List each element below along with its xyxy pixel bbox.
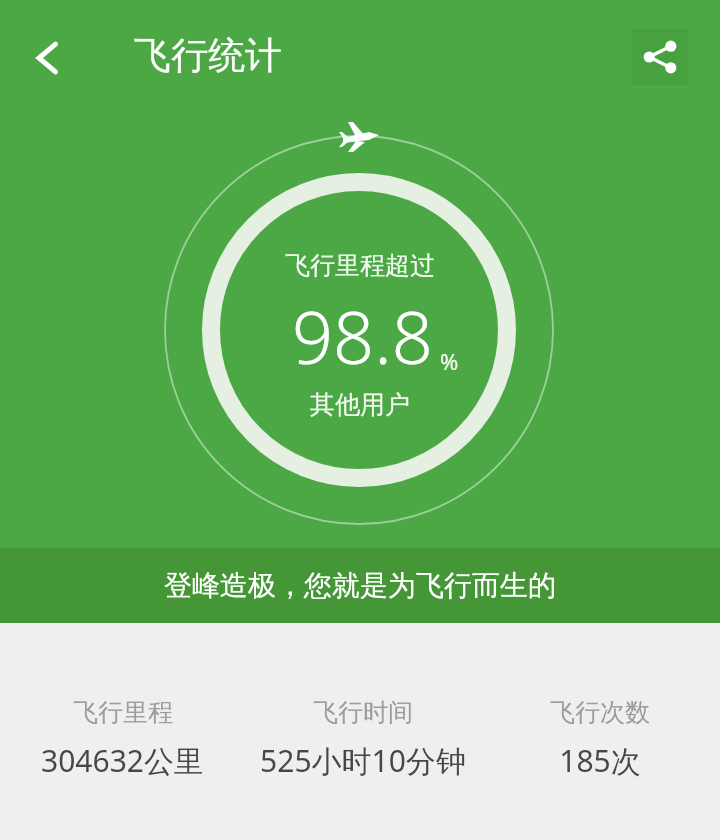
staticText: 登峰造极，您就是为飞行而生的 [164, 568, 556, 603]
button[interactable]: Back [10, 20, 86, 96]
button[interactable]: 飞行时间 [245, 623, 480, 840]
staticText: 其他用户 [310, 389, 410, 420]
staticText: 98.8 [292, 287, 433, 385]
staticText: 飞行里程 [73, 697, 173, 728]
button[interactable]: 飞行次数 [480, 623, 720, 840]
staticText: 飞行统计 [134, 32, 282, 79]
staticText: 飞行次数 [550, 697, 650, 728]
staticText: 飞行里程超过 [285, 250, 435, 281]
staticText: 飞行时间 [313, 697, 413, 728]
button[interactable]: 飞行里程 [0, 623, 245, 840]
button[interactable]: Share [632, 29, 688, 85]
staticText: 304632公里 [41, 740, 204, 781]
staticText: % [440, 346, 459, 376]
staticText: 525小时10分钟 [260, 740, 466, 781]
button[interactable]: 登峰造极，您就是为飞行而生的 [0, 548, 720, 623]
staticText: 185次 [559, 740, 641, 781]
